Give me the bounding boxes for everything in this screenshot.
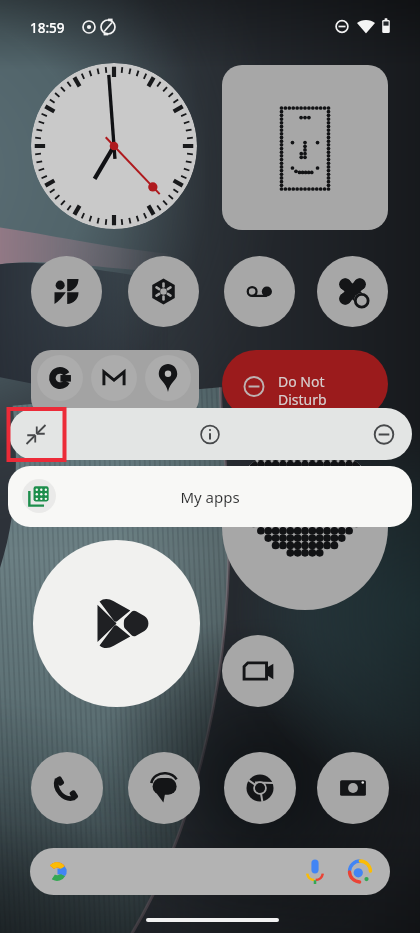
button[interactable]: Search <box>30 848 390 895</box>
button[interactable]: Snow <box>128 256 199 327</box>
button[interactable]: My apps <box>8 466 412 527</box>
button[interactable]: Video call <box>222 635 294 707</box>
button[interactable]: Do Not Disturb <box>222 350 388 418</box>
button[interactable]: Camera <box>317 752 389 824</box>
button[interactable]: Files <box>31 256 102 327</box>
button[interactable]: Messages <box>128 752 200 824</box>
staticText: Do Not Disturb <box>278 372 327 409</box>
button[interactable]: Widget info <box>200 424 221 445</box>
staticText: 18:59 <box>30 19 65 37</box>
button[interactable]: Remove widget <box>374 424 395 445</box>
button[interactable]: Chrome <box>224 752 296 824</box>
staticText: My apps <box>8 487 412 507</box>
button[interactable]: Collapse <box>9 408 64 460</box>
button[interactable]: Analog clock widget <box>31 63 197 229</box>
button[interactable]: Voicemail <box>224 256 295 327</box>
button[interactable]: Photos <box>317 256 388 327</box>
button[interactable]: Face widget <box>222 65 388 230</box>
button[interactable]: Play Store <box>33 540 200 707</box>
button[interactable]: Phone <box>31 752 103 824</box>
